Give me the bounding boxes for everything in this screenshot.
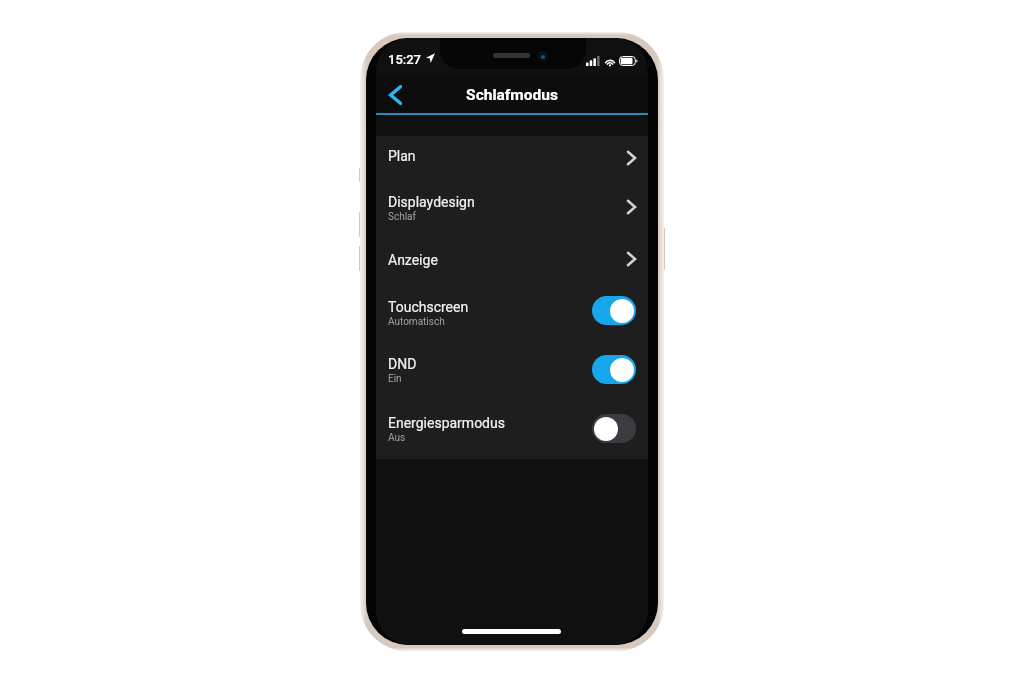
button[interactable]: Back (379, 78, 411, 112)
staticText: Ein (388, 373, 402, 385)
staticText: Displaydesign (388, 194, 475, 210)
other: Open Plan (627, 151, 636, 165)
button[interactable]: Displaydesign (376, 182, 648, 240)
button[interactable]: Plan (376, 136, 648, 182)
button[interactable]: Energiesparmodus off (592, 414, 636, 443)
button[interactable]: Energiesparmodus (376, 403, 648, 459)
staticText: DND (388, 356, 417, 372)
other: Open Anzeige (627, 252, 636, 266)
staticText: Schlafmodus (376, 86, 648, 104)
button[interactable]: Touchscreen on (592, 296, 636, 325)
staticText: Aus (388, 432, 406, 444)
button[interactable]: Touchscreen (376, 287, 648, 344)
staticText: Energiesparmodus (388, 415, 505, 431)
button[interactable]: DND (376, 344, 648, 403)
staticText: Schlaf (388, 211, 417, 223)
staticText: Anzeige (388, 252, 438, 268)
other: Open Displaydesign (627, 200, 636, 214)
staticText: Plan (388, 148, 416, 164)
button[interactable]: Anzeige (376, 240, 648, 287)
button[interactable]: DND on (592, 355, 636, 384)
staticText: Automatisch (388, 316, 445, 328)
staticText: 15:27 (388, 52, 421, 67)
staticText: Touchscreen (388, 299, 469, 315)
